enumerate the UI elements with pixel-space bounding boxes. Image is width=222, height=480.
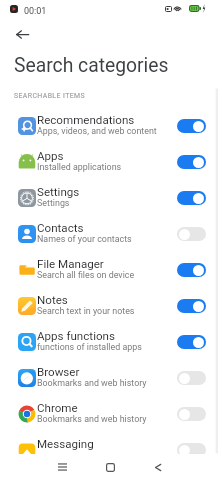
button[interactable]: Apps [0,144,222,180]
staticText: Browser [37,365,80,379]
button[interactable]: Browser [0,360,222,396]
staticText: Settings [37,185,80,199]
button[interactable]: Chrome [0,396,222,432]
staticText: Messaging [37,437,94,451]
staticText: Settings [37,198,70,208]
staticText: Search all files on device [37,270,135,280]
button[interactable]: Toggle [177,371,206,385]
staticText: Contacts [37,221,84,235]
staticText: File Manager [37,257,104,271]
button[interactable]: Toggle [177,299,206,313]
button[interactable]: Toggle [177,443,206,457]
staticText: Notes [37,293,68,307]
staticText: Search categories [14,54,169,77]
staticText: SEARCHABLE ITEMS [14,92,85,100]
staticText: Chrome [37,401,78,415]
staticText: 00:01 [24,6,47,17]
staticText: Bookmarks and web history [37,378,147,388]
button[interactable]: File Manager [0,252,222,288]
staticText: functions of installed apps [37,342,142,352]
button[interactable]: Messaging [0,432,222,468]
button[interactable]: Back [142,454,174,480]
button[interactable]: Notes [0,288,222,324]
button[interactable]: Recent apps [46,454,78,480]
button[interactable]: Settings [0,180,222,216]
staticText: Apps, videos, and web content [37,126,157,136]
staticText: Names of your contacts [37,234,132,244]
staticText: Apps functions [37,329,115,343]
staticText: Search text in your notes [37,306,135,316]
staticText: Installed applications [37,162,122,172]
button[interactable]: Home [94,454,126,480]
button[interactable]: Apps functions [0,324,222,360]
staticText: Recommendations [37,113,135,127]
staticText: Apps [37,149,64,163]
button[interactable]: Recommendations [0,108,222,144]
button[interactable]: Toggle [177,155,206,169]
staticText: Bookmarks and web history [37,414,147,424]
button[interactable]: Toggle [177,335,206,349]
button[interactable]: Toggle [177,119,206,133]
button[interactable]: Contacts [0,216,222,252]
staticText: Search text in messages [37,455,134,465]
button[interactable]: Toggle [177,227,206,241]
button[interactable]: Toggle [177,263,206,277]
button[interactable]: Toggle [177,407,206,421]
button[interactable]: Back [9,21,35,47]
button[interactable]: Toggle [177,191,206,205]
